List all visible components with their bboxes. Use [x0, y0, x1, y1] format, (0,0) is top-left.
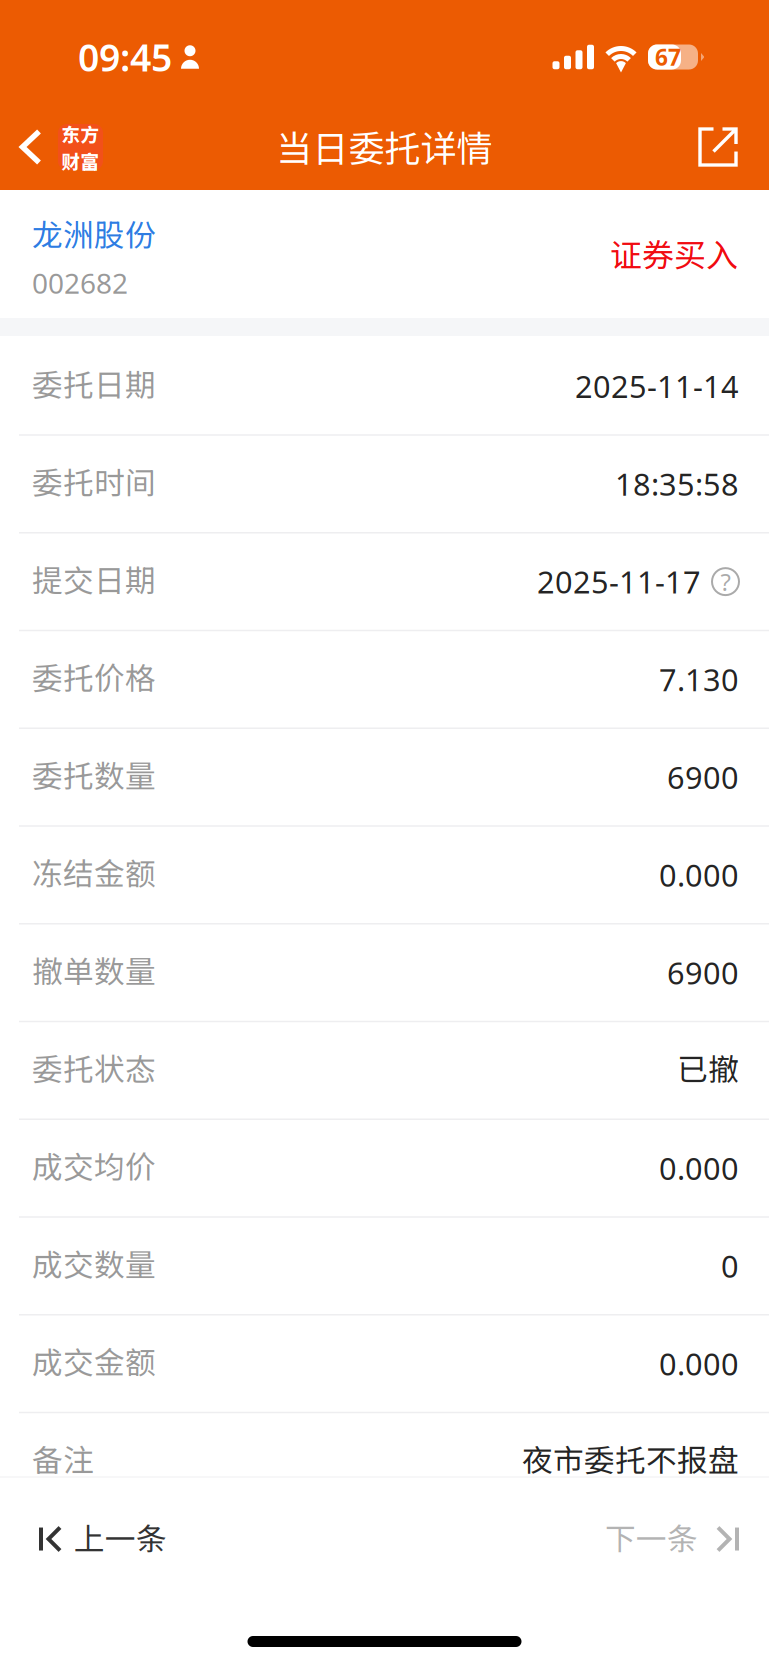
staticText: 6900 — [667, 757, 739, 797]
staticText: 夜市委托不报盘 — [522, 1436, 739, 1481]
staticText: 备注 — [32, 1436, 94, 1481]
button[interactable]: 返回东方财富 — [0, 114, 117, 190]
staticText: 委托数量 — [32, 752, 156, 796]
staticText: 0.000 — [659, 1343, 739, 1384]
staticText: 上一条 — [74, 1515, 167, 1559]
staticText: 成交均价 — [32, 1143, 156, 1187]
staticText: 成交数量 — [32, 1241, 156, 1285]
staticText: 67 — [655, 42, 681, 72]
staticText: 0.000 — [659, 1148, 739, 1188]
staticText: 撤单数量 — [32, 947, 156, 992]
staticText: 0 — [721, 1245, 739, 1286]
staticText: 证券买入 — [610, 230, 738, 276]
staticText: 当日委托详情 — [276, 120, 492, 172]
staticText: 2025-11-17 — [537, 561, 701, 602]
staticText: 冻结金额 — [32, 850, 156, 894]
staticText: 0.000 — [659, 854, 739, 895]
button[interactable]: 上一条 — [0, 1478, 191, 1600]
staticText: 提交日期 — [32, 556, 156, 601]
staticText: 6900 — [667, 952, 739, 993]
staticText: 成交金额 — [32, 1338, 156, 1383]
staticText: 已撤 — [677, 1045, 739, 1090]
staticText: ? — [720, 566, 730, 598]
staticText: 委托日期 — [32, 361, 156, 405]
staticText: 东方 — [61, 120, 99, 147]
staticText: 委托状态 — [32, 1045, 156, 1090]
staticText: 09:45 — [78, 32, 172, 82]
staticText: 龙洲股份 — [32, 211, 156, 255]
button[interactable]: 下一条 — [581, 1478, 769, 1600]
staticText: 委托时间 — [32, 459, 156, 503]
staticText: 委托价格 — [32, 654, 156, 699]
staticText: 下一条 — [605, 1515, 698, 1559]
staticText: 2025-11-14 — [575, 366, 739, 406]
staticText: 002682 — [32, 264, 128, 302]
staticText: 7.130 — [659, 659, 739, 700]
staticText: 18:35:58 — [615, 463, 739, 504]
button[interactable]: 分享 — [684, 114, 769, 190]
staticText: 财富 — [61, 147, 99, 174]
